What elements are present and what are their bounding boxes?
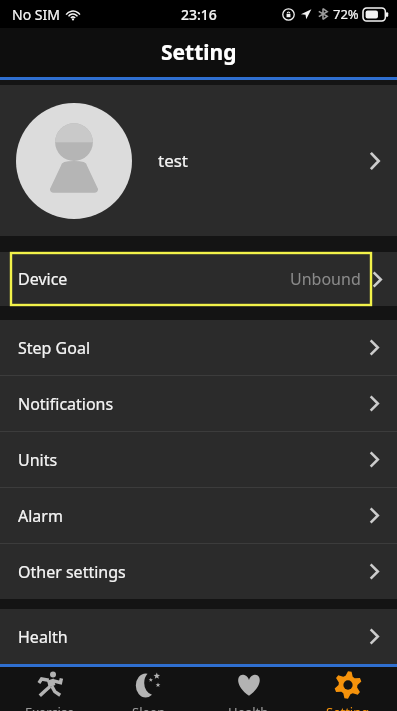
staticText: Health — [18, 626, 68, 648]
staticText: Setting — [161, 38, 237, 67]
button[interactable]: Notifications — [0, 376, 397, 431]
button[interactable]: Health — [0, 609, 397, 664]
button[interactable]: Device — [0, 252, 397, 306]
button[interactable]: Health — [199, 667, 298, 711]
staticText: No SIM — [12, 5, 60, 24]
staticText: Exercise — [25, 703, 75, 711]
staticText: Notifications — [18, 393, 114, 415]
staticText: Device — [18, 268, 68, 290]
button[interactable]: Other settings — [0, 544, 397, 599]
staticText: 23:16 — [181, 5, 217, 24]
button[interactable]: Sleep — [99, 667, 198, 711]
staticText: 72% — [333, 5, 359, 23]
button[interactable]: Setting — [298, 667, 397, 711]
staticText: Step Goal — [18, 337, 91, 359]
staticText: Units — [18, 449, 58, 471]
button[interactable]: Alarm — [0, 488, 397, 543]
button[interactable]: Exercise — [0, 667, 99, 711]
staticText: Unbound — [290, 268, 361, 290]
button[interactable]: Units — [0, 432, 397, 487]
staticText: Other settings — [18, 561, 126, 583]
staticText: Sleep — [132, 703, 166, 711]
staticText: Setting — [326, 703, 370, 711]
staticText: Health — [228, 703, 269, 711]
staticText: test — [158, 149, 189, 172]
button[interactable]: test — [0, 85, 397, 236]
staticText: Alarm — [18, 505, 63, 527]
button[interactable]: Step Goal — [0, 320, 397, 375]
